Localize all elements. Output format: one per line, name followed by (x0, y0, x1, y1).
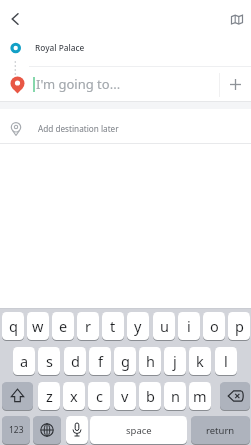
button[interactable]: f (89, 347, 111, 375)
staticText: l (224, 351, 228, 371)
staticText: y (134, 316, 142, 336)
button[interactable]: t (102, 312, 124, 340)
staticText: Royal Palace (35, 42, 85, 53)
button[interactable]: a (13, 347, 35, 375)
button[interactable]: 123 (2, 416, 30, 444)
staticText: d (71, 351, 80, 371)
staticText: k (196, 351, 204, 371)
staticText: j (173, 351, 177, 371)
staticText: r (85, 316, 91, 336)
staticText: h (146, 351, 155, 371)
button[interactable] (66, 416, 88, 444)
button[interactable] (220, 382, 250, 410)
staticText: x (70, 386, 78, 406)
staticText: c (96, 386, 103, 406)
staticText: 123 (9, 424, 24, 436)
staticText: b (146, 386, 155, 406)
button[interactable] (33, 416, 61, 444)
staticText: u (160, 316, 169, 336)
button[interactable]: c (88, 382, 110, 410)
button[interactable]: I'm going to... (0, 67, 251, 101)
button[interactable] (224, 4, 251, 30)
staticText: z (46, 386, 53, 406)
button[interactable]: space (90, 416, 187, 444)
button[interactable]: s (38, 347, 60, 375)
button[interactable]: j (164, 347, 186, 375)
button[interactable]: o (203, 312, 225, 340)
staticText: return (206, 424, 235, 437)
staticText: o (210, 316, 219, 336)
staticText: i (187, 316, 191, 336)
button[interactable]: Royal Palace (0, 34, 251, 62)
button[interactable]: x (63, 382, 85, 410)
button[interactable] (222, 71, 249, 98)
button[interactable]: r (77, 312, 99, 340)
staticText: space (126, 424, 152, 437)
button[interactable] (2, 382, 33, 410)
button[interactable]: p (228, 312, 250, 340)
staticText: g (121, 351, 130, 371)
button[interactable]: y (127, 312, 149, 340)
staticText: t (110, 316, 116, 336)
staticText: s (46, 351, 53, 371)
staticText: q (9, 316, 18, 336)
button[interactable] (0, 2, 34, 34)
staticText: a (20, 351, 29, 371)
button[interactable]: z (38, 382, 60, 410)
button[interactable]: v (114, 382, 136, 410)
button[interactable]: u (153, 312, 175, 340)
button[interactable]: i (178, 312, 200, 340)
staticText: I'm going to... (36, 75, 121, 93)
button[interactable]: Add destination later (0, 110, 251, 146)
button[interactable]: m (189, 382, 211, 410)
button[interactable]: return (191, 416, 250, 444)
button[interactable]: w (27, 312, 49, 340)
staticText: f (98, 351, 103, 371)
button[interactable]: d (64, 347, 86, 375)
button[interactable]: e (52, 312, 74, 340)
staticText: n (171, 386, 180, 406)
staticText: w (32, 316, 44, 336)
staticText: v (121, 386, 129, 406)
staticText: e (59, 316, 68, 336)
button[interactable]: h (139, 347, 161, 375)
button[interactable]: g (114, 347, 136, 375)
staticText: p (235, 316, 244, 336)
staticText: Add destination later (38, 123, 119, 134)
button[interactable]: q (2, 312, 24, 340)
staticText: m (193, 386, 207, 406)
button[interactable]: k (189, 347, 211, 375)
button[interactable]: b (139, 382, 161, 410)
button[interactable]: n (164, 382, 186, 410)
button[interactable]: l (215, 347, 237, 375)
